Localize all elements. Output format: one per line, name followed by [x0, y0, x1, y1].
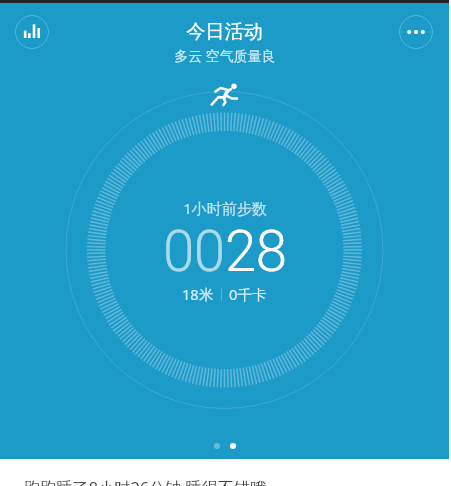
staticText: 00	[163, 219, 225, 285]
staticText: 28	[225, 219, 287, 285]
staticText: 18米	[182, 284, 214, 304]
staticText: 跑跑睡了8小时26分钟 睡得不错哦	[24, 477, 267, 486]
staticText: 1小时前步数	[183, 198, 267, 218]
button[interactable]: Statistics	[15, 15, 49, 49]
button[interactable]: More options	[399, 15, 433, 49]
staticText: 0千卡	[229, 284, 267, 304]
staticText: 今日活动	[186, 20, 263, 44]
staticText: 多云 空气质量良	[174, 46, 276, 65]
